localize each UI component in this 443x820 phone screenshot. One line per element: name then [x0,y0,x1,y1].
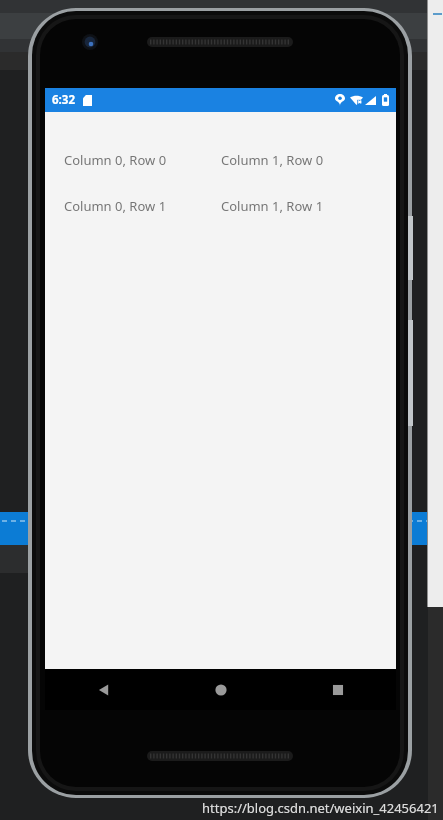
button[interactable]: Column 0, Row 0 [45,149,396,171]
staticText: Column 1, Row 1 [221,197,324,215]
button[interactable]: Column 0, Row 1 [45,195,396,217]
staticText: Column 1, Row 0 [221,151,324,169]
staticText: https://blog.csdn.net/weixin_42456421 [202,799,439,817]
staticText: 6:32 [52,92,75,108]
button[interactable]: Back [45,669,162,710]
button[interactable]: Recent apps [279,669,396,710]
staticText: Column 0, Row 1 [64,197,167,215]
staticText: Column 0, Row 0 [64,151,167,169]
button[interactable]: Home [162,669,279,710]
